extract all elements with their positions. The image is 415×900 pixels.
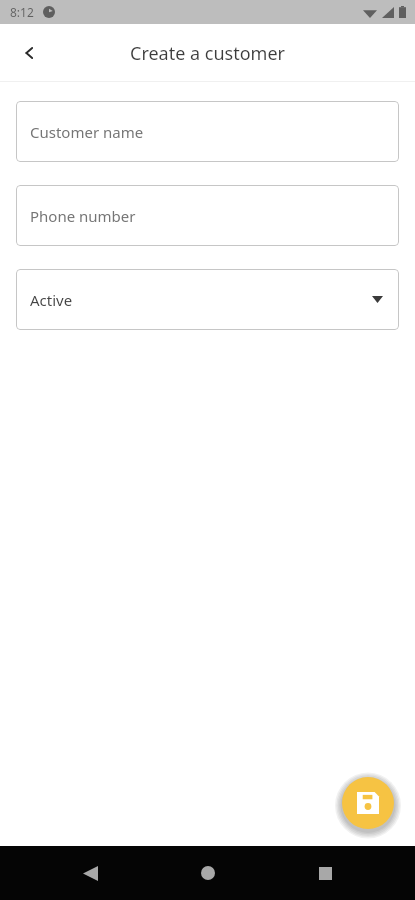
staticText: Active (30, 290, 73, 310)
button[interactable]: Back (62, 846, 118, 900)
button[interactable]: Phone number (16, 185, 399, 246)
button[interactable]: Home (180, 846, 236, 900)
button[interactable]: Back (8, 31, 52, 75)
button[interactable]: Recent apps (297, 846, 353, 900)
button[interactable]: Save (342, 777, 394, 829)
button[interactable]: Active (16, 269, 399, 330)
staticText: Create a customer (0, 41, 415, 66)
button[interactable]: Customer name (16, 101, 399, 162)
staticText: 8:12 (10, 4, 34, 20)
staticText: Customer name (30, 122, 144, 142)
staticText: Phone number (30, 206, 136, 226)
